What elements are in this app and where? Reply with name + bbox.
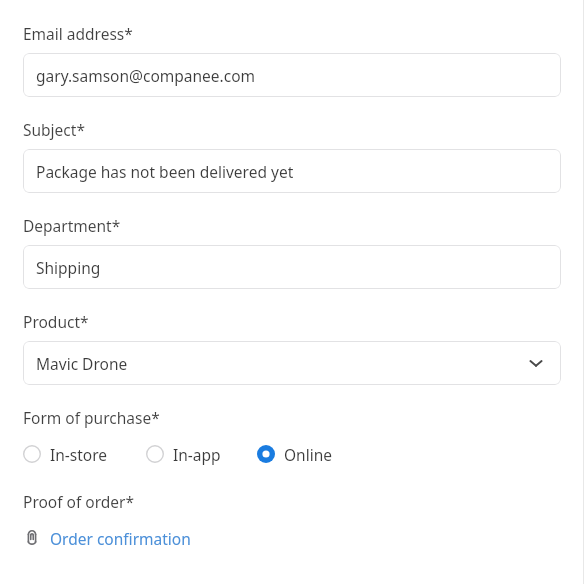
button[interactable]: Online xyxy=(257,439,333,469)
staticText: Online xyxy=(284,444,333,465)
staticText: Proof of order* xyxy=(23,491,135,512)
staticText: Order confirmation xyxy=(50,528,191,549)
staticText: Shipping xyxy=(36,257,101,278)
staticText: Subject* xyxy=(23,119,85,140)
button[interactable]: In-store xyxy=(23,439,146,469)
staticText: Department* xyxy=(23,215,121,236)
button[interactable]: Package has not been delivered yet xyxy=(23,149,561,193)
button[interactable]: Mavic Drone xyxy=(23,341,561,385)
staticText: gary.samson@companee.com xyxy=(36,65,256,86)
button[interactable]: Shipping xyxy=(23,245,561,289)
staticText: In-store xyxy=(50,444,108,465)
staticText: Email address* xyxy=(23,23,133,44)
staticText: Package has not been delivered yet xyxy=(36,161,294,182)
button[interactable]: In-app xyxy=(146,439,257,469)
button[interactable]: Attach order confirmation xyxy=(23,524,191,552)
staticText: In-app xyxy=(173,444,221,465)
staticText: Mavic Drone xyxy=(36,353,128,374)
button[interactable]: gary.samson@companee.com xyxy=(23,53,561,97)
staticText: Product* xyxy=(23,311,89,332)
staticText: Form of purchase* xyxy=(23,407,160,428)
